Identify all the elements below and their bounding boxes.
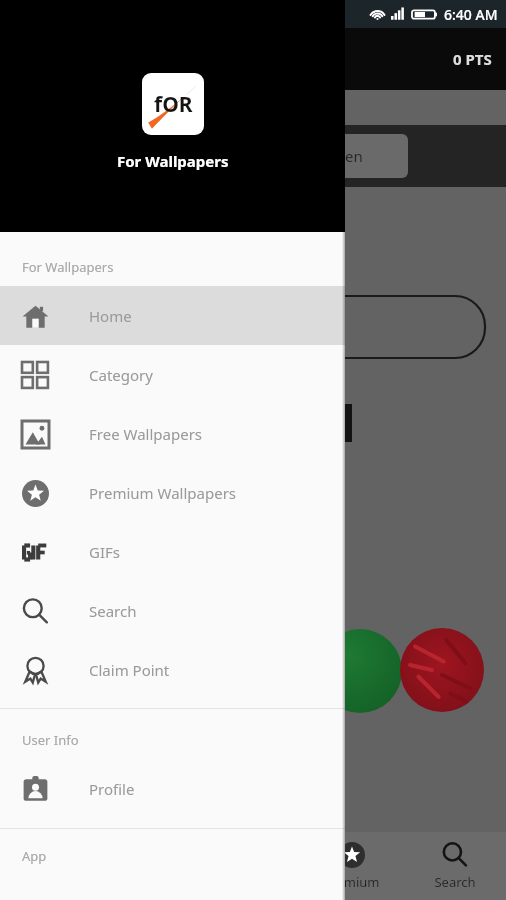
staticText: Claim Point [89, 660, 170, 680]
button[interactable]: Search [0, 581, 345, 640]
staticText: 6:40 AM [444, 5, 498, 24]
staticText: fOR [154, 90, 193, 119]
staticText: Home [89, 306, 132, 326]
button[interactable] [400, 628, 484, 712]
button[interactable]: Home [0, 286, 345, 345]
staticText: For Wallpapers [117, 151, 229, 171]
staticText: Profile [89, 779, 135, 799]
staticText: 0 PTS [453, 49, 492, 69]
staticText: Premium Wallpapers [89, 483, 237, 503]
button[interactable]: Premium [300, 832, 403, 900]
staticText: Premium [323, 873, 380, 891]
staticText: Search [89, 601, 137, 621]
staticText: Category [89, 365, 153, 385]
button[interactable]: Search [403, 832, 506, 900]
button[interactable]: Profile [0, 759, 345, 818]
staticText: Open [324, 146, 363, 166]
staticText: For Wallpapers [22, 258, 114, 276]
button[interactable]: GIFs [0, 522, 345, 581]
button[interactable]: Open [278, 134, 408, 178]
staticText: GIFs [89, 542, 120, 562]
button[interactable]: Free Wallpapers [0, 404, 345, 463]
button[interactable]: Claim Point [0, 640, 345, 699]
staticText: App [22, 847, 47, 865]
button[interactable]: Premium Wallpapers [0, 463, 345, 522]
staticText: Free Wallpapers [89, 424, 203, 444]
staticText: User Info [22, 731, 79, 749]
staticText: Search [434, 873, 476, 891]
button[interactable]: Category [0, 345, 345, 404]
button[interactable] [318, 629, 402, 713]
